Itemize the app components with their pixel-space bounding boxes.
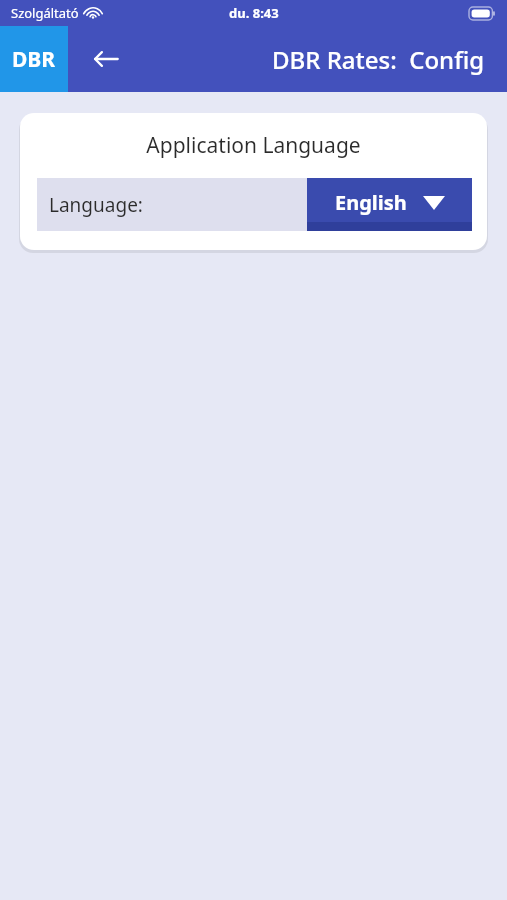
staticText: English: [335, 189, 407, 216]
staticText: Application Language: [20, 131, 487, 160]
button[interactable]: DBR: [0, 26, 68, 92]
staticText: DBR: [12, 45, 56, 74]
staticText: du. 8:43: [229, 4, 279, 22]
button[interactable]: Back: [80, 33, 132, 85]
staticText: Szolgáltató: [11, 4, 79, 22]
staticText: DBR Rates: Config: [272, 43, 485, 76]
button[interactable]: English: [307, 178, 472, 231]
staticText: Language:: [49, 192, 307, 218]
